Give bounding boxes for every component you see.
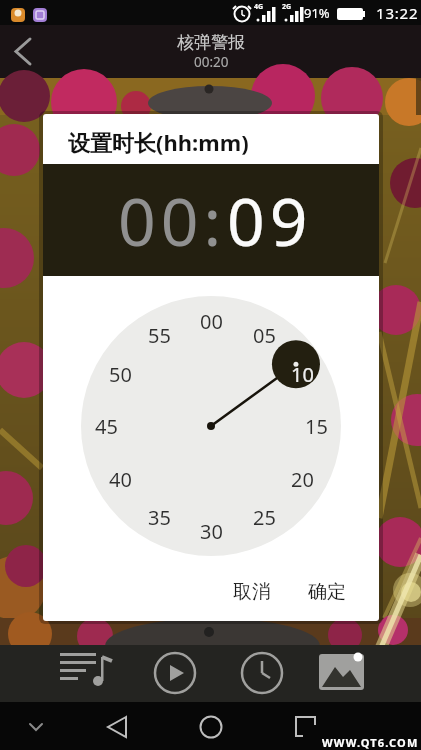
staticText: 4G bbox=[254, 2, 264, 12]
button[interactable] bbox=[211, 645, 316, 702]
staticText: 35 bbox=[148, 504, 171, 530]
button[interactable] bbox=[316, 645, 421, 702]
staticText: 设置时长(hh:mm) bbox=[68, 127, 249, 157]
staticText: 05 bbox=[253, 322, 276, 348]
staticText: WWW.QT6.COM bbox=[322, 735, 419, 750]
button[interactable] bbox=[0, 702, 141, 750]
button[interactable] bbox=[281, 702, 421, 750]
staticText: 09 bbox=[227, 175, 313, 265]
staticText: 00 bbox=[200, 308, 223, 334]
button[interactable]: 确定 bbox=[308, 580, 346, 604]
staticText: 40 bbox=[109, 466, 132, 492]
staticText: 91% bbox=[304, 4, 330, 22]
button[interactable] bbox=[0, 645, 106, 702]
staticText: 核弹警报 bbox=[177, 32, 245, 53]
button[interactable] bbox=[106, 645, 211, 702]
staticText: 00:20 bbox=[194, 53, 229, 71]
staticText: 10 bbox=[291, 361, 314, 387]
staticText: 25 bbox=[253, 504, 276, 530]
staticText: 2G bbox=[282, 2, 292, 12]
staticText: 55 bbox=[148, 322, 171, 348]
staticText: 00: bbox=[118, 175, 227, 265]
button[interactable]: 取消 bbox=[233, 580, 271, 604]
staticText: 50 bbox=[109, 361, 132, 387]
button[interactable] bbox=[0, 25, 53, 78]
staticText: 30 bbox=[200, 518, 223, 544]
staticText: 45 bbox=[95, 413, 118, 439]
staticText: 20 bbox=[291, 466, 314, 492]
staticText: 15 bbox=[305, 413, 328, 439]
staticText: 13:22 bbox=[376, 3, 419, 23]
button[interactable] bbox=[141, 702, 281, 750]
